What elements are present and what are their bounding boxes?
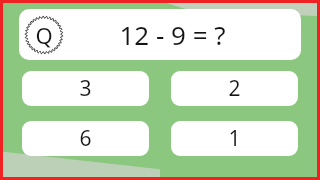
other: Question [25,16,63,54]
button[interactable]: 1 [171,121,298,156]
staticText: Q [35,20,53,50]
staticText: 12 - 9 = ? [119,17,226,52]
button[interactable]: 6 [22,121,149,156]
staticText: 6 [79,124,92,153]
button[interactable]: 2 [171,71,298,106]
button[interactable]: 3 [22,71,149,106]
staticText: 1 [228,124,241,153]
staticText: 3 [79,74,92,103]
staticText: 2 [228,74,241,103]
button[interactable]: Question [19,9,301,60]
